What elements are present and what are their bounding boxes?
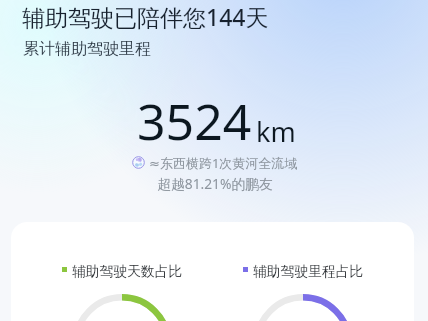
staticText: 辅助驾驶已陪伴您144天 (22, 1, 269, 32)
staticText: 辅助驾驶天数占比 (72, 263, 183, 280)
staticText: 3524 (137, 87, 252, 155)
button[interactable]: 辅助驾驶里程占比 (233, 222, 373, 321)
staticText: km (256, 113, 296, 150)
staticText: 超越81.21%的鹏友 (1, 174, 428, 193)
button[interactable]: 辅助驾驶天数占比 (52, 222, 192, 321)
staticText: ≈东西横跨1次黄河全流域 (149, 154, 298, 172)
staticText: 累计辅助驾驶里程 (23, 39, 151, 59)
staticText: 辅助驾驶里程占比 (253, 263, 364, 280)
